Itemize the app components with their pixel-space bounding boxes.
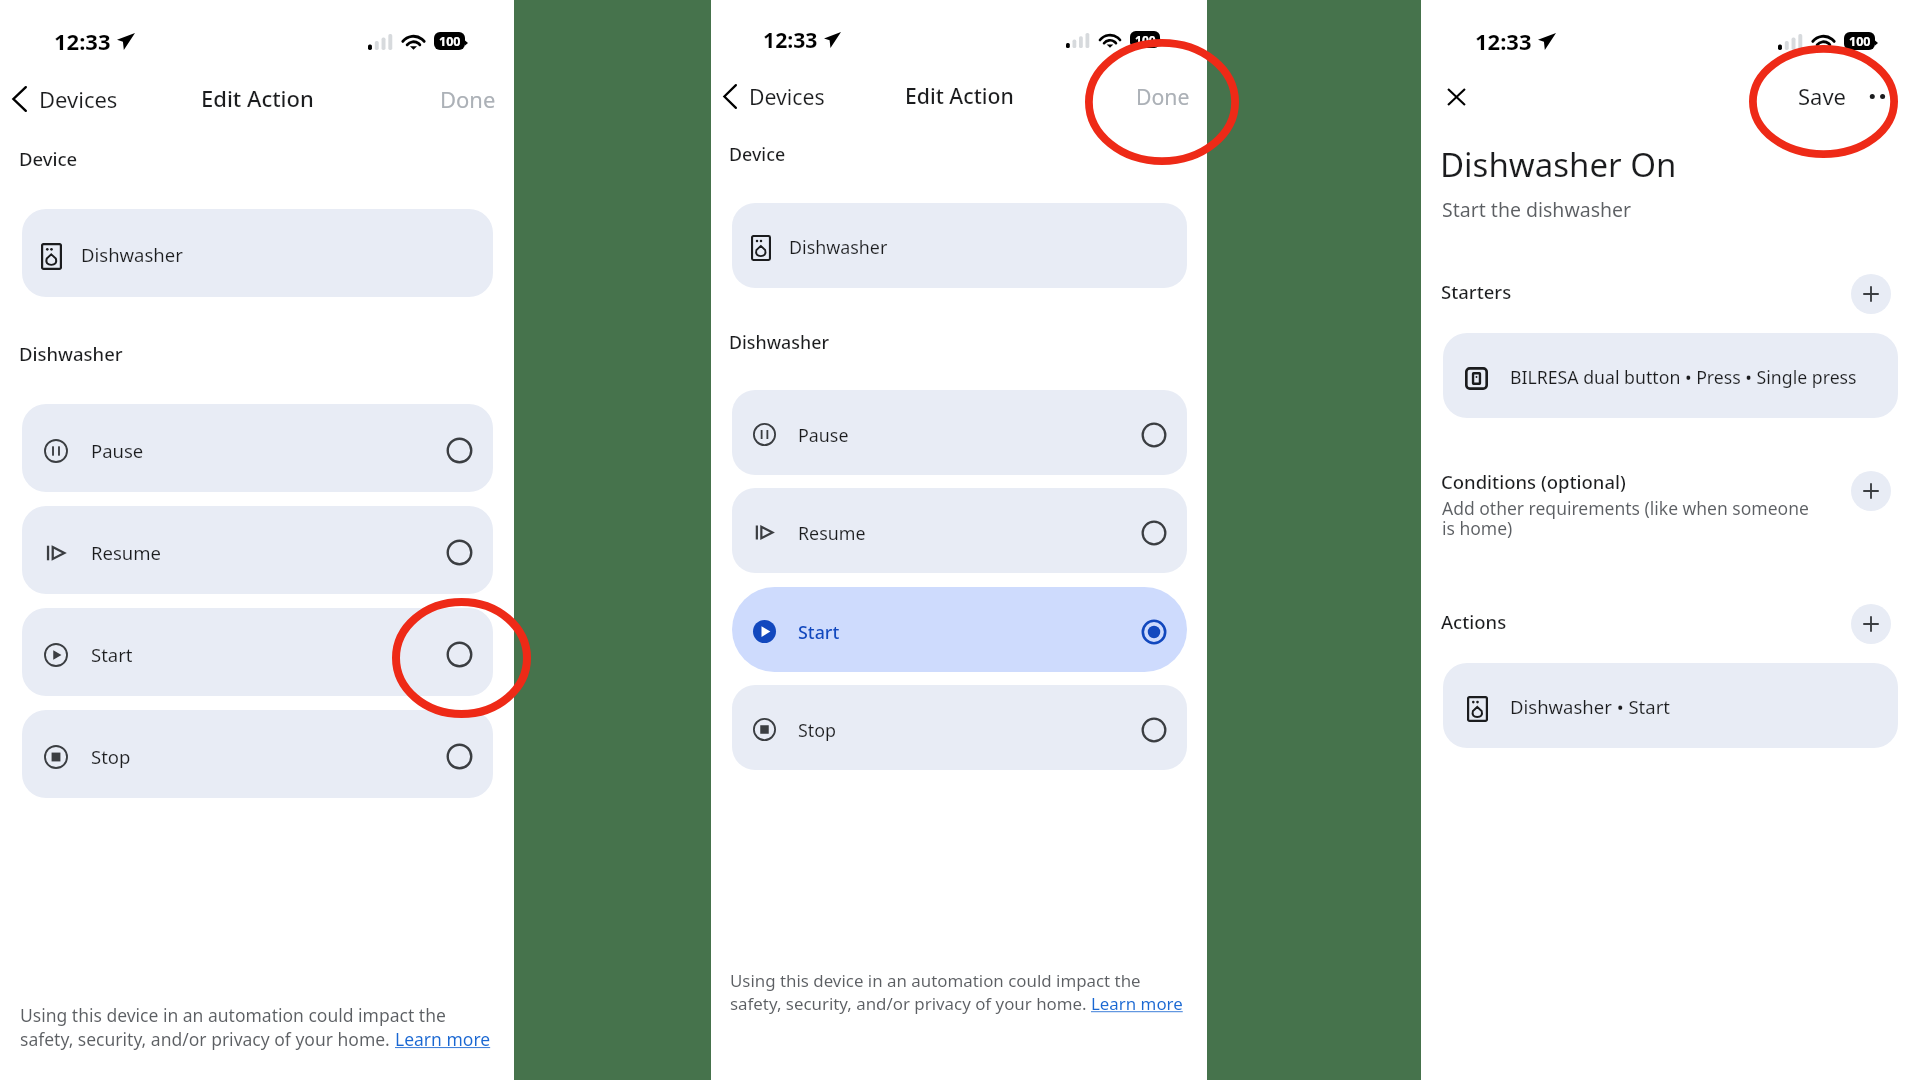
- staticText: Dishwasher: [729, 330, 829, 354]
- staticText: Edit Action: [201, 83, 314, 113]
- staticText: Dishwasher • Start: [1510, 694, 1670, 719]
- staticText: BILRESA dual button • Press • Single pre…: [1510, 365, 1857, 389]
- staticText: Edit Action: [905, 81, 1014, 110]
- staticText: Resume: [91, 540, 161, 565]
- button[interactable]: Resume: [732, 488, 1187, 573]
- button[interactable]: Start: [22, 608, 493, 696]
- button[interactable]: Stop: [22, 710, 493, 798]
- staticText: Resume: [798, 521, 866, 545]
- staticText: safety, security, and/or privacy of your…: [730, 992, 1091, 1015]
- button[interactable]: BILRESA dual button • Press • Single pre…: [1443, 333, 1898, 418]
- button[interactable]: Stop: [732, 685, 1187, 770]
- button[interactable]: More options: [1867, 89, 1891, 104]
- button[interactable]: Back: [711, 78, 836, 115]
- staticText: Starters: [1441, 279, 1512, 304]
- button[interactable]: Start: [732, 587, 1187, 672]
- other: Back: [723, 84, 737, 109]
- staticText: Learn more: [1091, 992, 1183, 1015]
- button[interactable]: Pause: [732, 390, 1187, 475]
- staticText: 100: [1135, 32, 1156, 48]
- other: Back: [12, 86, 27, 112]
- staticText: Conditions (optional): [1441, 469, 1626, 494]
- staticText: Dishwasher On: [1440, 142, 1677, 187]
- staticText: Save: [1798, 81, 1847, 111]
- staticText: Add other requirements (like when someon…: [1442, 496, 1809, 541]
- staticText: Start: [798, 620, 840, 644]
- staticText: Start the dishwasher: [1442, 196, 1632, 223]
- staticText: Start: [91, 642, 133, 667]
- staticText: Stop: [798, 718, 837, 742]
- staticText: safety, security, and/or privacy of your…: [20, 1027, 395, 1051]
- staticText: Done: [1136, 82, 1190, 111]
- button[interactable]: Close: [1439, 79, 1474, 114]
- button[interactable]: Add action: [1851, 604, 1891, 644]
- staticText: Device: [19, 146, 78, 171]
- button[interactable]: Done: [1136, 82, 1190, 111]
- staticText: Device: [729, 142, 786, 166]
- staticText: Using this device in an automation could…: [20, 1003, 446, 1027]
- button[interactable]: Add condition: [1851, 471, 1891, 511]
- staticText: Dishwasher: [81, 242, 183, 267]
- staticText: Learn more: [395, 1027, 491, 1051]
- button[interactable]: Dishwasher: [22, 209, 493, 297]
- staticText: 100: [439, 33, 461, 50]
- button[interactable]: Dishwasher: [732, 203, 1187, 288]
- staticText: Dishwasher: [19, 341, 123, 366]
- staticText: 12:33: [1475, 26, 1532, 56]
- staticText: Devices: [749, 82, 825, 111]
- button[interactable]: Add starter: [1851, 274, 1891, 314]
- button[interactable]: Done: [440, 84, 496, 114]
- button[interactable]: Resume: [22, 506, 493, 594]
- staticText: Dishwasher: [789, 235, 888, 259]
- staticText: Actions: [1441, 609, 1507, 634]
- staticText: Done: [440, 84, 496, 114]
- staticText: 100: [1849, 33, 1871, 50]
- staticText: Using this device in an automation could…: [730, 969, 1141, 992]
- staticText: Pause: [798, 423, 849, 447]
- staticText: Pause: [91, 438, 144, 463]
- staticText: Devices: [39, 84, 118, 114]
- staticText: Stop: [91, 744, 131, 769]
- staticText: 12:33: [763, 25, 818, 54]
- staticText: 12:33: [54, 26, 111, 56]
- button[interactable]: Save: [1798, 81, 1847, 111]
- button[interactable]: Dishwasher • Start: [1443, 663, 1898, 748]
- button[interactable]: Back: [0, 80, 130, 118]
- button[interactable]: Pause: [22, 404, 493, 492]
